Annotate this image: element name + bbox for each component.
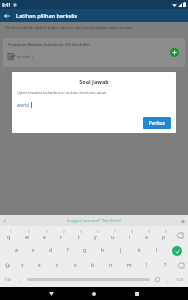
staticText: r [60,234,63,241]
button[interactable]: . [163,273,172,286]
button[interactable]: 7 [104,228,121,243]
staticText: z [21,262,24,269]
button[interactable]: a [8,243,25,258]
staticText: Periksa [149,120,165,126]
button[interactable]: b [84,258,102,273]
button[interactable]: l [148,243,166,258]
button[interactable]: Back [46,289,56,299]
button[interactable]: ?123 [172,273,188,286]
button[interactable]: Pelajaran Bahasa Indonesia 7th Desk Bfe [3,38,185,67]
staticText: h [101,247,105,254]
staticText: 9 [148,230,150,234]
staticText: 5 [80,230,82,234]
button[interactable]: c [48,258,66,273]
staticText: 9:41 [2,2,11,8]
button[interactable]: Emoji [152,273,163,286]
button[interactable]: s [25,243,42,258]
button[interactable]: g [76,243,94,258]
button[interactable]: d [42,243,59,258]
staticText: d [49,247,53,254]
staticText: m [127,262,132,269]
staticText: Sugges 'somem?' Tak Kirimi [67,218,122,224]
button[interactable]: 6 [87,228,104,243]
button[interactable]: z [14,258,31,273]
staticText: Soal Jawab [12,78,176,85]
button[interactable]: Delete [174,258,188,273]
staticText: a [15,247,18,254]
button[interactable]: Enter [172,246,182,256]
staticText: Berikut adalah daftar tugas latihan akti… [5,25,133,31]
staticText: u [111,234,115,241]
staticText: s [32,247,35,254]
staticText: x [38,262,41,269]
staticText: v [74,262,77,269]
button[interactable]: ?123 [0,273,16,286]
staticText: c [56,262,59,269]
button[interactable]: 8 [121,228,138,243]
staticText: f [67,247,69,254]
button[interactable]: 0 [155,228,172,243]
button[interactable]: Space [27,273,150,286]
button[interactable]: Expand suggestions [2,218,8,224]
button[interactable]: Back [0,9,13,22]
staticText: j [120,247,122,254]
staticText: o [145,234,149,241]
button[interactable]: 1 [0,228,18,243]
button[interactable]: 3 [36,228,53,243]
button[interactable]: 4 [53,228,70,243]
staticText: 2 [28,230,30,234]
staticText: t [78,234,80,241]
button[interactable]: f [59,243,76,258]
staticText: 7 [114,230,116,234]
staticText: i [129,234,131,241]
button[interactable]: m [120,258,138,273]
staticText: ! [146,262,148,269]
button[interactable]: k [130,243,148,258]
staticText: Ujian lewatst butarkunci untuk memulai u… [17,90,108,96]
staticText: n [109,262,113,269]
staticText: k [138,247,141,254]
staticText: ?123 [4,277,12,282]
button[interactable]: Keyboard settings [180,218,186,224]
staticText: ?123 [176,277,184,282]
button[interactable]: Add [170,48,179,57]
staticText: e [43,234,46,241]
staticText: 4 [63,230,65,234]
staticText: Pelajaran Bahasa Indonesia 7th Desk Bfe [8,42,90,48]
button[interactable]: , [16,273,25,286]
staticText: . [167,277,169,283]
staticText: world [17,102,30,108]
button[interactable]: 5 [70,228,87,243]
button[interactable]: j [112,243,130,258]
staticText: ⚙ [181,219,186,224]
staticText: b [91,262,95,269]
button[interactable]: n [102,258,120,273]
button[interactable]: h [94,243,112,258]
staticText: p [162,234,166,241]
staticText: 0 [165,230,167,234]
button[interactable]: ! [138,258,156,273]
staticText: 8 [131,230,133,234]
staticText: 1 [10,230,12,234]
button[interactable]: Home [89,289,99,299]
button[interactable]: ? [156,258,174,273]
staticText: ? [164,262,167,269]
button[interactable]: x [31,258,48,273]
staticText: g [83,247,87,254]
staticText: Latihan pilihan berkelis [16,12,78,19]
staticText: y [94,234,97,241]
staticText: by soal 1 [17,54,34,59]
button[interactable]: Backspace [172,228,188,243]
button[interactable]: Recent apps [132,289,142,299]
staticText: w [25,234,29,241]
button[interactable]: 2 [18,228,36,243]
button[interactable]: Shift [0,258,14,273]
staticText: , [20,277,22,283]
staticText: l [156,247,158,254]
button[interactable]: world [17,102,32,108]
staticText: 3 [46,230,48,234]
button[interactable]: Periksa [143,117,171,129]
button[interactable]: 9 [138,228,155,243]
button[interactable]: v [66,258,84,273]
staticText: q [7,234,11,241]
